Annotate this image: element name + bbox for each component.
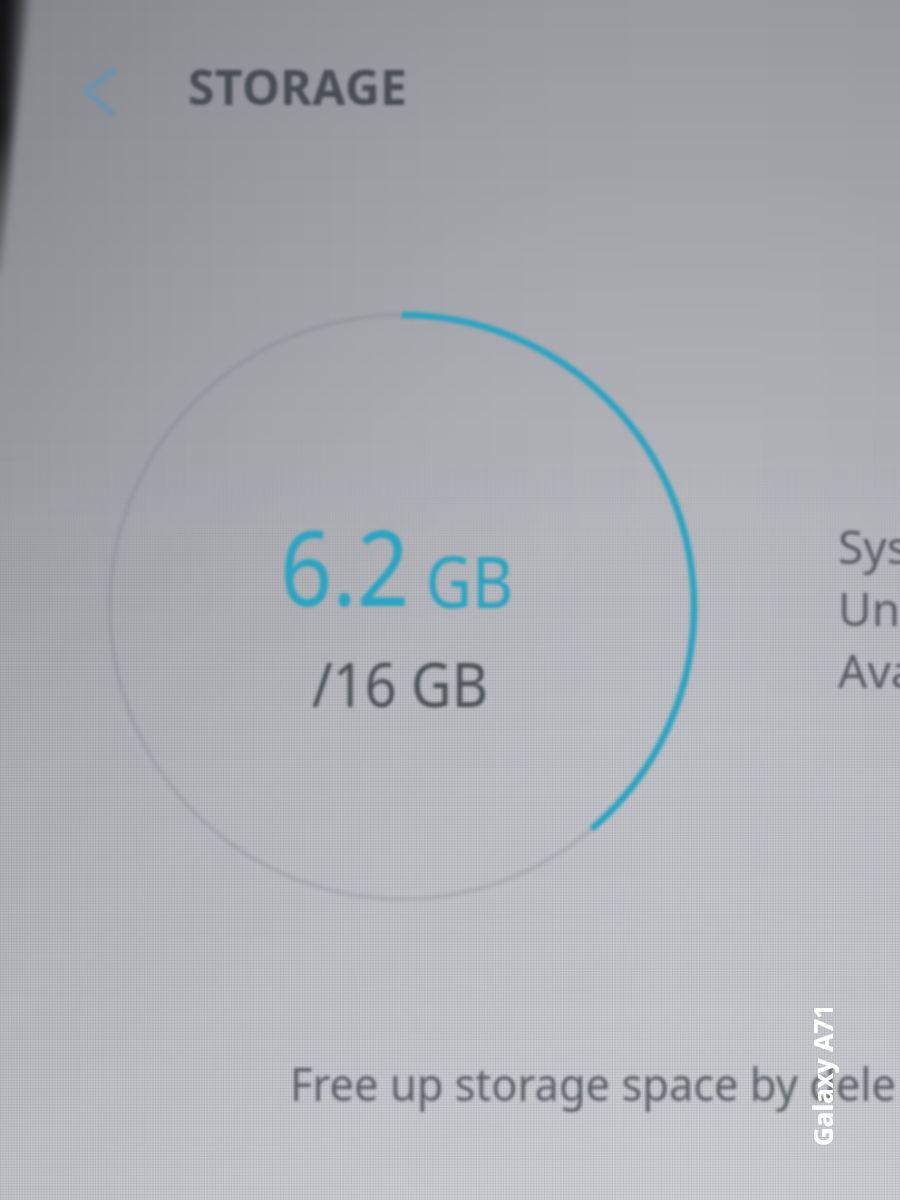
staticText: GB (409, 531, 513, 629)
button[interactable]: Back (62, 52, 142, 132)
staticText: Ava (838, 639, 900, 702)
staticText: Sys (838, 515, 900, 578)
staticText: 6.2 (280, 495, 409, 637)
staticText: /16 GB (312, 641, 488, 725)
staticText: Free up storage space by dele (290, 1053, 897, 1114)
staticText: Unu (838, 577, 900, 640)
staticText: STORAGE (188, 54, 408, 119)
staticText: Galaxy A71 (805, 1003, 840, 1146)
button[interactable]: STORAGE (188, 54, 408, 119)
